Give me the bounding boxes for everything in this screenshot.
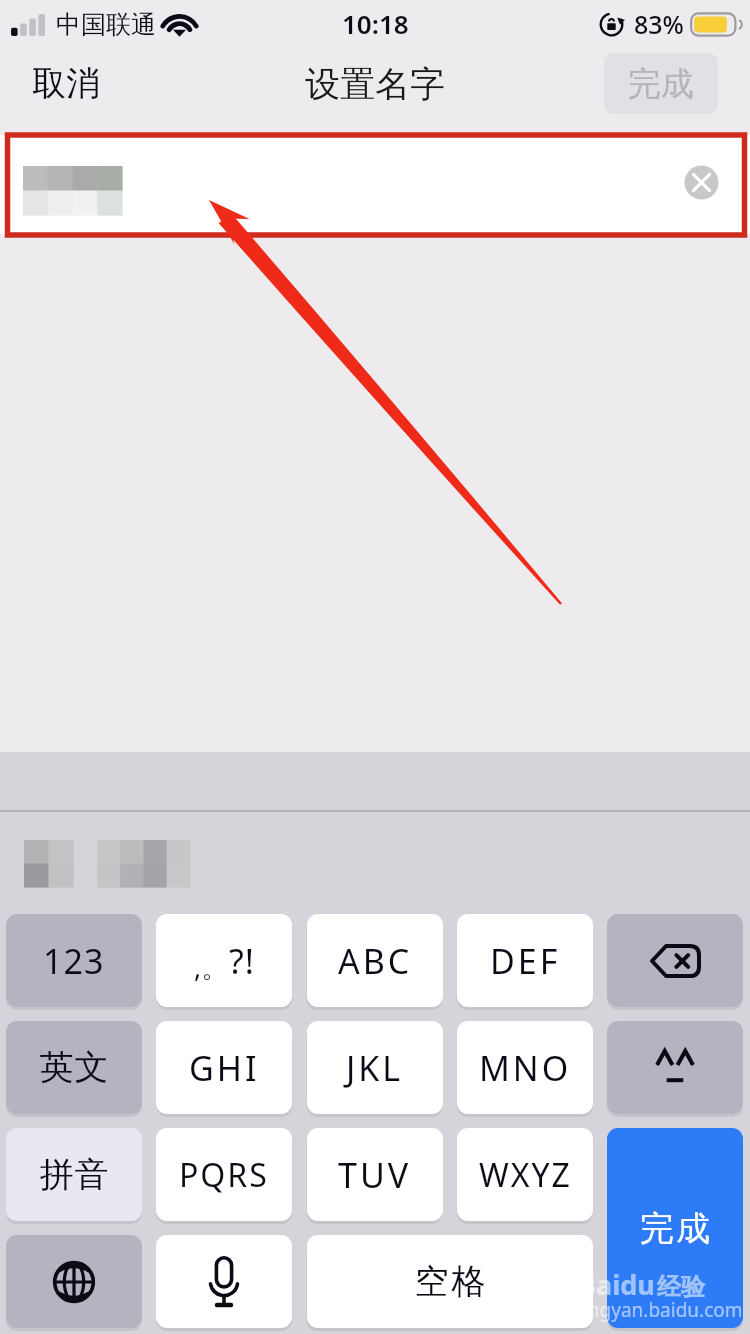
button[interactable]: Backspace	[607, 914, 743, 1007]
staticText: 设置名字	[305, 62, 445, 106]
staticText: 空格	[413, 1260, 487, 1303]
staticText: ABC	[338, 938, 413, 984]
staticText: GHI	[189, 1045, 260, 1091]
button[interactable]: Voice input	[156, 1235, 292, 1328]
staticText: TUV	[338, 1152, 412, 1198]
button[interactable]: 完成	[607, 1128, 743, 1328]
button[interactable]: GHI	[156, 1021, 292, 1114]
staticText: 完成	[628, 63, 694, 105]
button[interactable]: ABC	[307, 914, 443, 1007]
staticText: 完成	[639, 1207, 711, 1250]
button[interactable]: Clear text	[0, 135, 750, 234]
staticText: 英文	[39, 1046, 109, 1089]
staticText: ?!	[229, 938, 255, 984]
staticText: 拼音	[39, 1153, 109, 1196]
button[interactable]: Clear text	[683, 164, 720, 201]
button[interactable]: 123	[6, 914, 142, 1007]
button[interactable]: DEF	[457, 914, 593, 1007]
staticText: 经验	[657, 1272, 705, 1302]
button[interactable]: 空格	[307, 1235, 593, 1328]
button[interactable]: 英文	[6, 1021, 142, 1114]
staticText: MNO	[479, 1045, 572, 1091]
button[interactable]: WXYZ	[457, 1128, 593, 1221]
button[interactable]: Switch keyboard	[6, 1235, 142, 1328]
staticText: ,。	[194, 948, 229, 985]
staticText: 83%	[634, 7, 684, 41]
button[interactable]: TUV	[307, 1128, 443, 1221]
button[interactable]: 完成	[604, 53, 718, 114]
staticText: 10:18	[342, 6, 409, 41]
staticText: Baidu	[578, 1266, 655, 1303]
staticText: 取消	[32, 62, 100, 105]
button[interactable]: ,。	[156, 914, 292, 1007]
staticText: WXYZ	[479, 1153, 572, 1197]
staticText: PQRS	[179, 1153, 269, 1197]
staticText: 中国联通	[56, 9, 156, 40]
button[interactable]: Emoji	[607, 1021, 743, 1114]
button[interactable]: 取消	[18, 52, 114, 115]
staticText: 123	[43, 938, 105, 984]
staticText: jingyan.baidu.com	[578, 1297, 743, 1323]
button[interactable]: JKL	[307, 1021, 443, 1114]
button[interactable]: MNO	[457, 1021, 593, 1114]
button[interactable]: 拼音	[6, 1128, 142, 1221]
staticText: DEF	[490, 938, 561, 984]
button[interactable]: PQRS	[156, 1128, 292, 1221]
staticText: JKL	[346, 1045, 404, 1091]
